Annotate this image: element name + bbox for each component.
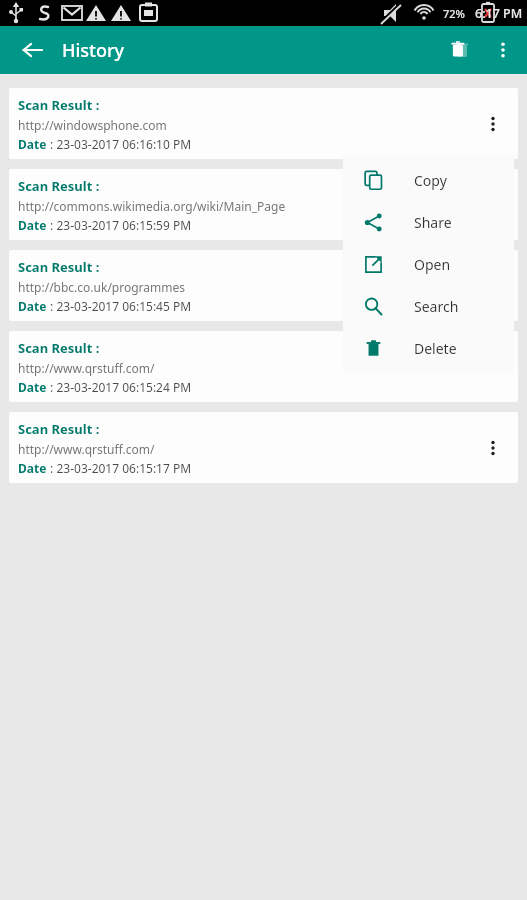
staticText: Search: [414, 297, 459, 316]
button[interactable]: Scan Result :: [9, 412, 518, 483]
button[interactable]: Delete all: [437, 28, 481, 72]
staticText: Date: [18, 217, 47, 233]
staticText: Scan Result :: [18, 177, 100, 195]
staticText: : 23-03-2017 06:15:59 PM: [47, 217, 192, 233]
button[interactable]: Scan Result :: [9, 250, 518, 321]
staticText: Delete: [414, 339, 457, 358]
button[interactable]: Share: [343, 201, 514, 243]
staticText: http://www.qrstuff.com/: [18, 441, 155, 457]
button[interactable]: Back: [10, 28, 54, 72]
staticText: Date: [18, 298, 47, 314]
staticText: http://bbc.co.uk/programmes: [18, 279, 186, 295]
staticText: : 23-03-2017 06:16:10 PM: [47, 136, 192, 152]
staticText: Open: [414, 255, 451, 274]
staticText: Date: [18, 460, 47, 476]
button[interactable]: Item options: [474, 429, 512, 467]
staticText: http://www.qrstuff.com/: [18, 360, 155, 376]
staticText: History: [62, 38, 125, 63]
button[interactable]: Item options: [474, 105, 512, 143]
staticText: Scan Result :: [18, 339, 100, 357]
button[interactable]: More options: [483, 30, 523, 70]
staticText: : 23-03-2017 06:15:24 PM: [47, 379, 192, 395]
staticText: Date: [18, 379, 47, 395]
staticText: 72%: [443, 6, 465, 21]
button[interactable]: Scan Result :: [9, 88, 518, 159]
button[interactable]: Copy: [343, 159, 514, 201]
button[interactable]: Search: [343, 285, 514, 327]
button[interactable]: Delete: [343, 327, 514, 369]
staticText: Scan Result :: [18, 258, 100, 276]
button[interactable]: Open: [343, 243, 514, 285]
staticText: : 23-03-2017 06:15:45 PM: [47, 298, 192, 314]
staticText: Date: [18, 136, 47, 152]
staticText: http://commons.wikimedia.org/wiki/Main_P…: [18, 198, 286, 214]
staticText: 6:17 PM: [475, 5, 523, 22]
staticText: Share: [414, 213, 452, 232]
staticText: Scan Result :: [18, 96, 100, 114]
staticText: Scan Result :: [18, 420, 100, 438]
staticText: : 23-03-2017 06:15:17 PM: [47, 460, 192, 476]
button[interactable]: Scan Result :: [9, 331, 518, 402]
staticText: Copy: [414, 171, 447, 190]
staticText: http://windowsphone.com: [18, 117, 167, 133]
button[interactable]: Scan Result :: [9, 169, 518, 240]
